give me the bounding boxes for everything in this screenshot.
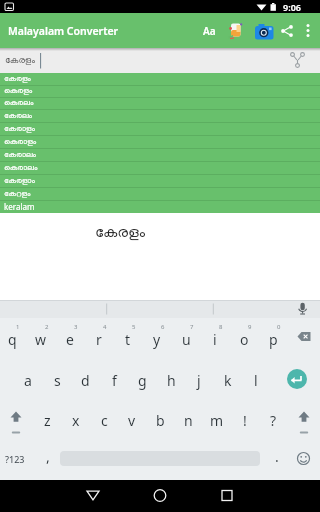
staticText: !: [243, 411, 247, 430]
button[interactable]: [290, 300, 320, 318]
button[interactable]: [279, 24, 296, 38]
staticText: r: [96, 330, 102, 349]
button[interactable]: a: [14, 367, 42, 393]
button[interactable]: [292, 328, 318, 350]
button[interactable]: [295, 450, 312, 467]
button[interactable]: [300, 20, 316, 42]
button[interactable]: കേറളം: [0, 187, 320, 200]
staticText: 3: [74, 323, 78, 331]
button[interactable]: [77, 480, 109, 512]
button[interactable]: കെരളം: [0, 85, 320, 97]
staticText: കെരാലം: [4, 164, 38, 172]
staticText: Malayalam Converter: [8, 24, 119, 38]
button[interactable]: c: [91, 407, 117, 433]
button[interactable]: d: [71, 367, 99, 393]
staticText: ,: [46, 447, 50, 466]
button[interactable]: കേരാലം: [0, 148, 320, 161]
staticText: f: [112, 371, 117, 390]
button[interactable]: q: [0, 326, 26, 352]
button[interactable]: v: [119, 407, 145, 433]
staticText: കേരളം: [95, 225, 146, 240]
button[interactable]: [4, 406, 28, 436]
staticText: .: [275, 447, 279, 466]
staticText: കേരളം: [4, 75, 31, 83]
staticText: 9:06: [283, 1, 301, 13]
staticText: 1: [16, 323, 20, 331]
staticText: k: [224, 371, 232, 390]
button[interactable]: keralam: [0, 200, 320, 213]
staticText: കേരലം: [4, 112, 32, 120]
button[interactable]: കേരളം: [0, 73, 320, 85]
button[interactable]: y: [143, 326, 171, 352]
button[interactable]: കേരലം: [0, 109, 320, 122]
staticText: 6: [161, 323, 165, 331]
staticText: s: [54, 371, 61, 390]
staticText: n: [184, 411, 193, 430]
staticText: keralam: [4, 201, 35, 212]
button[interactable]: i: [201, 326, 229, 352]
button[interactable]: o: [230, 326, 258, 352]
staticText: a: [24, 371, 32, 390]
button[interactable]: p: [259, 326, 287, 352]
button[interactable]: j: [185, 367, 213, 393]
button[interactable]: കേരാളം: [0, 122, 320, 135]
button[interactable]: .: [267, 444, 287, 468]
staticText: 9: [248, 323, 252, 331]
button[interactable]: s: [43, 367, 71, 393]
staticText: 7: [190, 323, 194, 331]
staticText: ?123: [5, 453, 25, 465]
staticText: കേരളാം: [4, 177, 35, 185]
button[interactable]: g: [128, 367, 156, 393]
staticText: 2: [45, 323, 49, 331]
button[interactable]: [254, 21, 275, 41]
button[interactable]: കേരളാം: [0, 174, 320, 187]
button[interactable]: b: [147, 407, 173, 433]
staticText: കേരാളം: [4, 125, 35, 133]
staticText: u: [182, 330, 191, 349]
button[interactable]: ,: [38, 444, 58, 468]
button[interactable]: കെരലം: [0, 97, 320, 109]
button[interactable]: x: [63, 407, 89, 433]
button[interactable]: കെരാളം: [0, 135, 320, 148]
staticText: കെരളം: [4, 87, 33, 95]
button[interactable]: Aa: [196, 16, 222, 46]
button[interactable]: k: [214, 367, 242, 393]
button[interactable]: [287, 369, 307, 389]
button[interactable]: r: [85, 326, 113, 352]
staticText: m: [210, 411, 224, 430]
staticText: കേറളം: [4, 190, 31, 198]
button[interactable]: [292, 406, 316, 436]
button[interactable]: [144, 480, 176, 512]
button[interactable]: ?123: [0, 447, 30, 471]
staticText: w: [35, 330, 47, 349]
button[interactable]: l: [242, 367, 270, 393]
staticText: കെരാളം: [4, 138, 37, 146]
staticText: x: [72, 411, 80, 430]
button[interactable]: n: [175, 407, 201, 433]
staticText: g: [138, 371, 147, 390]
button[interactable]: [211, 480, 243, 512]
staticText: d: [81, 371, 90, 390]
button[interactable]: !: [232, 407, 258, 433]
button[interactable]: കെരാലം: [0, 161, 320, 174]
button[interactable]: u: [172, 326, 200, 352]
button[interactable]: z: [34, 407, 60, 433]
staticText: Aa: [203, 24, 216, 38]
staticText: 5: [132, 323, 136, 331]
button[interactable]: w: [27, 326, 55, 352]
staticText: v: [128, 411, 136, 430]
button[interactable]: h: [157, 367, 185, 393]
button[interactable]: f: [100, 367, 128, 393]
button[interactable]: m: [204, 407, 230, 433]
button[interactable]: ?: [260, 407, 286, 433]
button[interactable]: [226, 21, 246, 41]
staticText: j: [197, 371, 201, 390]
staticText: 0: [277, 323, 281, 331]
button[interactable]: e: [56, 326, 84, 352]
button[interactable]: t: [114, 326, 142, 352]
staticText: e: [66, 330, 74, 349]
staticText: i: [213, 330, 217, 349]
staticText: ?: [270, 411, 277, 430]
staticText: b: [156, 411, 165, 430]
